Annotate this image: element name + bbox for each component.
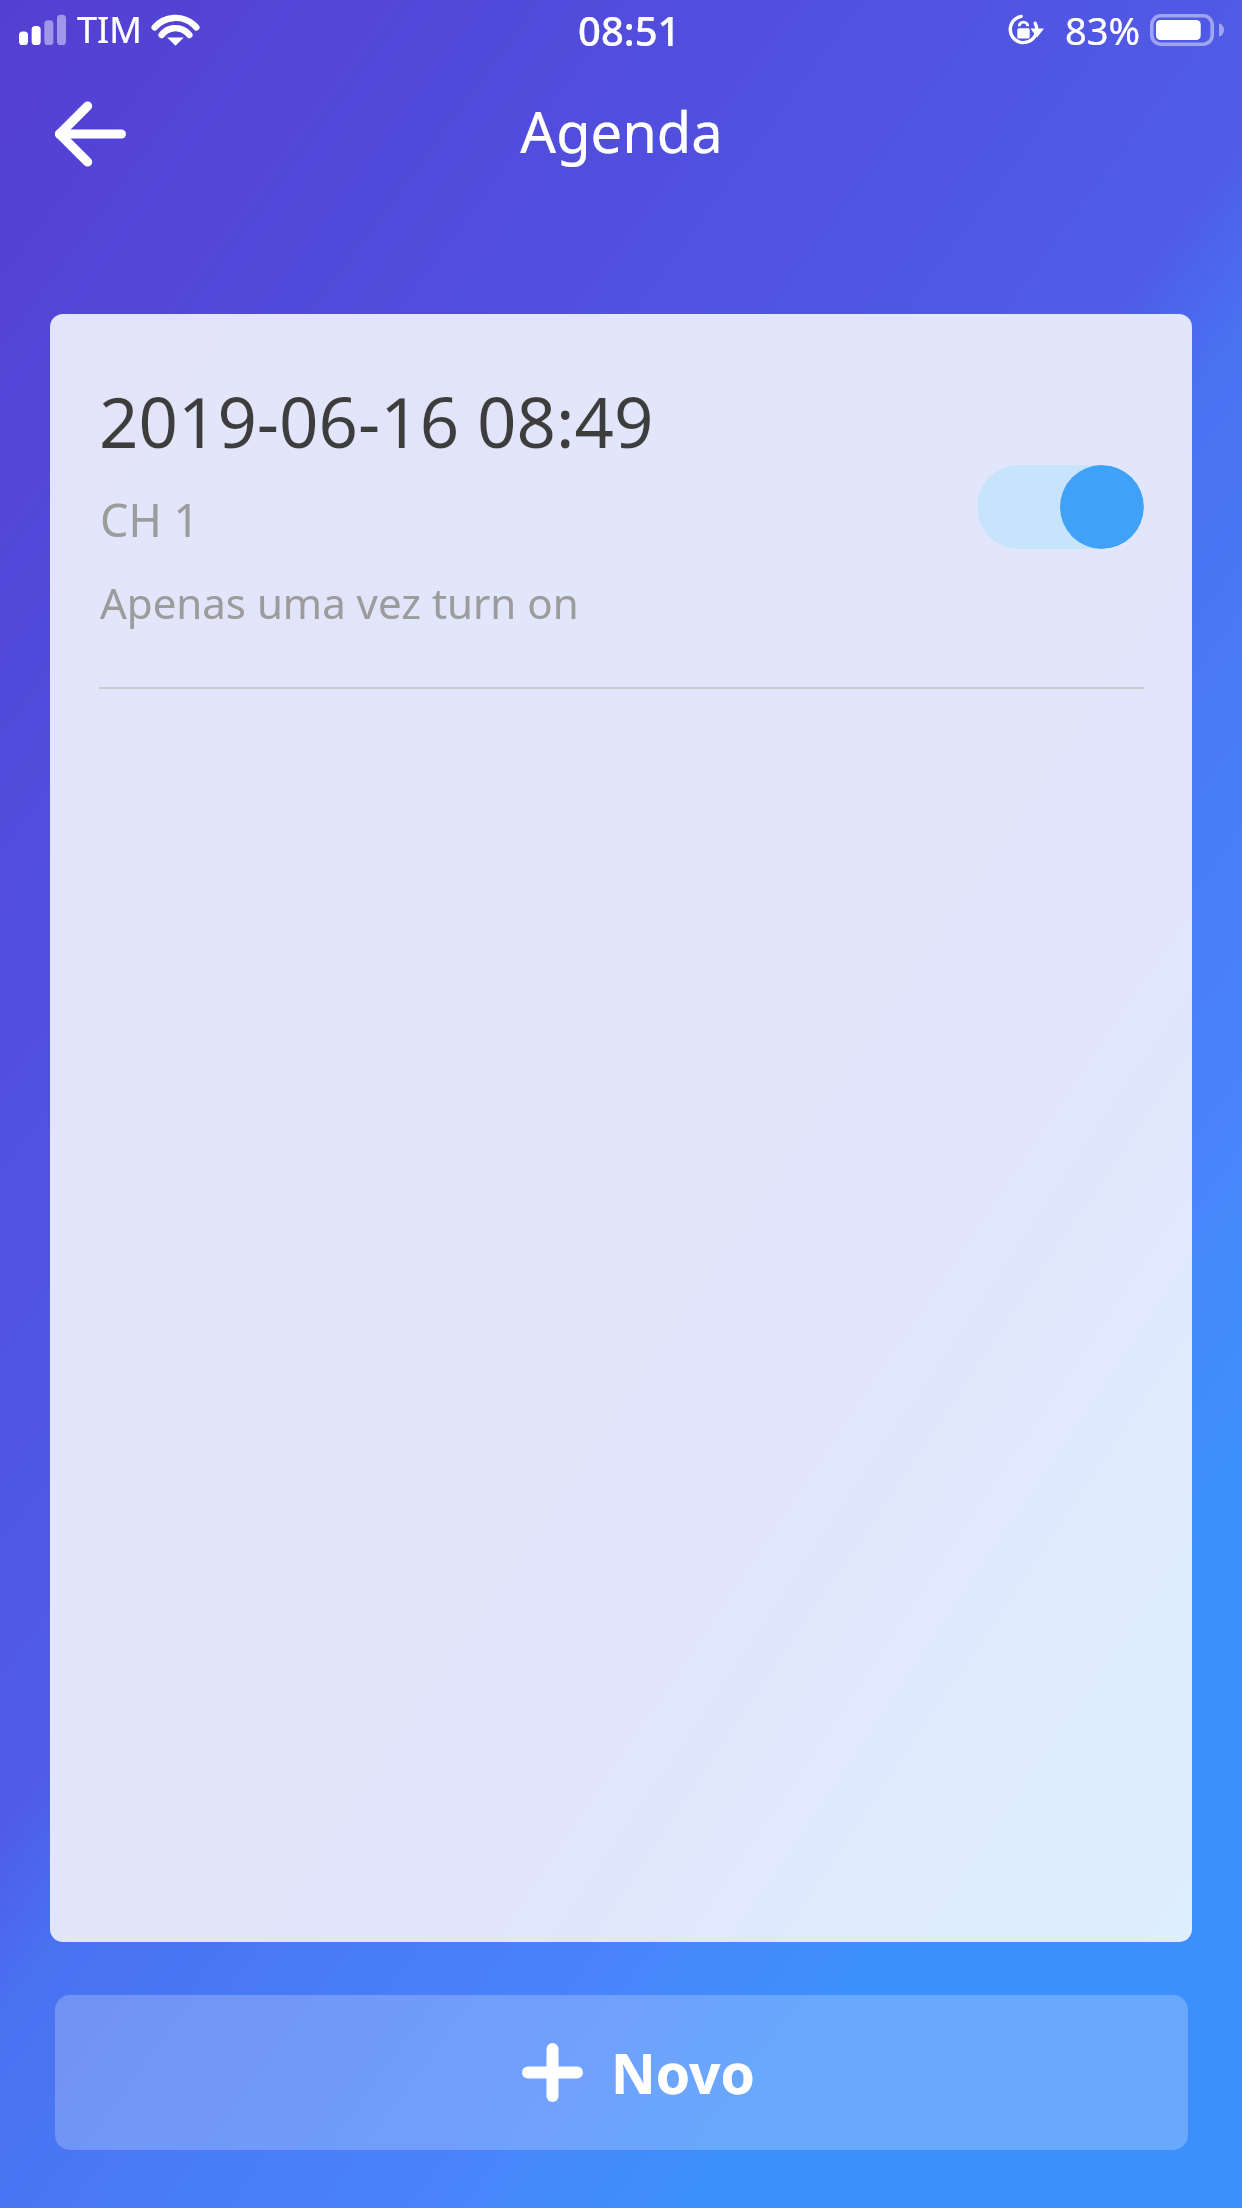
staticText: Agenda	[520, 93, 723, 169]
staticText: 2019-06-16 08:49	[99, 374, 654, 468]
button[interactable]: 2019-06-16 08:49	[50, 314, 1192, 689]
staticText: CH 1	[100, 489, 200, 550]
staticText: Apenas uma vez turn on	[100, 574, 579, 631]
staticText: Novo	[611, 2035, 755, 2110]
staticText: 08:51	[578, 3, 681, 57]
button[interactable]: Back	[25, 88, 155, 180]
staticText: TIM	[77, 5, 142, 54]
button[interactable]: Novo	[55, 1995, 1188, 2150]
button[interactable]: Toggle alarm	[977, 465, 1144, 549]
staticText: 83%	[1065, 4, 1141, 56]
